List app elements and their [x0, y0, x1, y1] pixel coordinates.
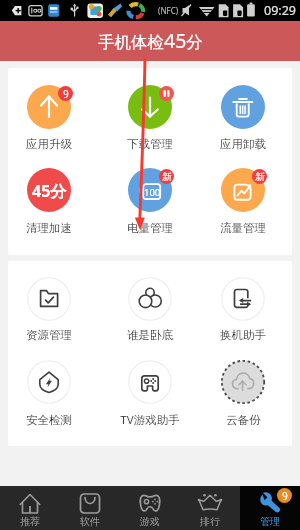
- button[interactable]: 清理加速: [27, 168, 71, 212]
- staticText: 09:29: [264, 2, 296, 19]
- button[interactable]: 安全检测: [27, 360, 71, 404]
- staticText: 流量管理: [220, 221, 266, 235]
- button[interactable]: 换机助手: [221, 277, 265, 321]
- button[interactable]: 资源管理: [27, 277, 71, 321]
- staticText: (NFC): [158, 5, 179, 16]
- button[interactable]: 流量管理: [221, 168, 265, 212]
- staticText: 9: [63, 87, 69, 101]
- staticText: 应用卸载: [220, 137, 266, 151]
- staticText: 9: [282, 489, 288, 503]
- button[interactable]: 软件: [60, 486, 120, 530]
- staticText: 排行: [200, 515, 220, 528]
- staticText: 推荐: [20, 515, 40, 528]
- staticText: 手机体检45分: [98, 27, 203, 54]
- staticText: 换机助手: [220, 328, 266, 342]
- staticText: 100: [144, 186, 161, 199]
- button[interactable]: 应用卸载: [221, 85, 265, 129]
- button[interactable]: 电量管理: [128, 168, 172, 212]
- staticText: 新: [162, 171, 172, 183]
- staticText: TV游戏助手: [120, 412, 180, 428]
- staticText: 资源管理: [26, 328, 72, 342]
- staticText: 应用升级: [26, 137, 72, 151]
- staticText: 清理加速: [26, 221, 72, 235]
- staticText: 软件: [80, 515, 100, 528]
- button[interactable]: 谁是卧底: [128, 277, 172, 321]
- button[interactable]: 游戏: [120, 486, 180, 530]
- staticText: 云备份: [226, 413, 261, 427]
- staticText: 安全检测: [26, 413, 72, 427]
- button[interactable]: 推荐: [0, 486, 60, 530]
- staticText: 电量管理: [127, 221, 173, 235]
- button[interactable]: 下载管理: [128, 85, 172, 129]
- staticText: 下载管理: [127, 137, 173, 151]
- staticText: 新: [255, 171, 265, 183]
- staticText: 谁是卧底: [127, 328, 173, 342]
- staticText: 45分: [32, 180, 67, 202]
- button[interactable]: 排行: [180, 486, 240, 530]
- button[interactable]: 管理: [240, 486, 300, 530]
- staticText: 管理: [260, 515, 280, 528]
- button[interactable]: TV游戏助手: [128, 360, 172, 404]
- button[interactable]: 云备份: [221, 360, 265, 404]
- button[interactable]: 应用升级: [27, 85, 71, 129]
- staticText: 游戏: [140, 515, 160, 528]
